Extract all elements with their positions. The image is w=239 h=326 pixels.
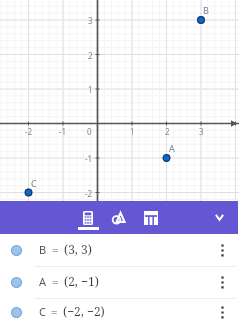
- staticText: (3, 3): [64, 241, 92, 257]
- staticText: -1: [85, 153, 93, 164]
- button[interactable]: Calculator: [75, 201, 101, 234]
- staticText: -2: [85, 188, 93, 199]
- staticText: 2: [88, 50, 93, 61]
- staticText: -2: [25, 126, 33, 137]
- button[interactable]: C: [0, 299, 239, 326]
- staticText: B: [39, 242, 47, 257]
- staticText: =: [51, 304, 58, 319]
- staticText: (−2, −2): [63, 303, 105, 319]
- staticText: A: [39, 274, 47, 289]
- button[interactable]: A: [0, 267, 239, 298]
- staticText: (2, −1): [64, 273, 99, 289]
- button[interactable]: More options: [209, 235, 235, 266]
- button[interactable]: Table: [138, 201, 164, 234]
- button[interactable]: B: [0, 235, 239, 266]
- button[interactable]: Collapse: [203, 201, 235, 234]
- staticText: 3: [88, 15, 93, 26]
- staticText: B: [203, 4, 209, 16]
- staticText: 0: [87, 126, 92, 137]
- staticText: C: [39, 304, 46, 319]
- button[interactable]: More options: [209, 299, 235, 326]
- staticText: =: [52, 242, 59, 257]
- staticText: A: [169, 142, 175, 154]
- staticText: 2: [165, 126, 170, 137]
- staticText: 1: [130, 126, 135, 137]
- button[interactable]: Shapes: [106, 201, 132, 234]
- staticText: =: [52, 274, 59, 289]
- button[interactable]: More options: [209, 267, 235, 298]
- staticText: 3: [199, 126, 204, 137]
- staticText: -1: [59, 126, 67, 137]
- staticText: C: [31, 177, 37, 189]
- staticText: 1: [88, 84, 93, 95]
